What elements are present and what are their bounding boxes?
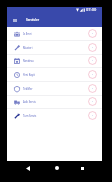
button[interactable]: Tum Servis (7, 109, 102, 123)
button[interactable]: Recent apps (76, 162, 88, 174)
staticText: Is Emri (23, 32, 32, 36)
button[interactable]: Open navigation menu (9, 14, 21, 26)
button[interactable]: Home (51, 162, 63, 174)
button[interactable]: Is Emri (7, 27, 102, 41)
button[interactable]: Acik Servis (7, 95, 102, 109)
staticText: 07:00 (86, 7, 97, 12)
button[interactable]: Yeni Kayit (7, 68, 102, 82)
button[interactable]: Musteri (7, 41, 102, 55)
button[interactable]: Randevu (7, 54, 102, 68)
staticText: Tum Servis (23, 114, 37, 118)
staticText: Teklifler (23, 87, 33, 91)
staticText: Yeni Kayit (23, 73, 35, 77)
staticText: Musteri (23, 46, 33, 50)
staticText: Servisler (26, 18, 40, 22)
staticText: Acik Servis (23, 100, 36, 104)
button[interactable]: Back (22, 162, 34, 174)
button[interactable]: Teklifler (7, 82, 102, 96)
staticText: Randevu (23, 59, 34, 63)
